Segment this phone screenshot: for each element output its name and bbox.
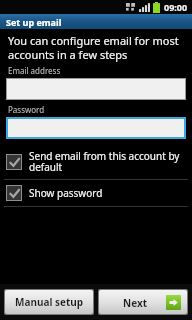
button[interactable]: Show password bbox=[0, 180, 192, 206]
staticText: 09:00 bbox=[164, 1, 188, 13]
staticText: Manual setup bbox=[15, 295, 84, 309]
button[interactable]: Send email from this account by default bbox=[0, 144, 192, 179]
staticText: You can configure email for most account… bbox=[8, 33, 180, 62]
staticText: Set up email bbox=[6, 16, 62, 28]
staticText: Email address bbox=[8, 65, 61, 76]
button[interactable]: Next bbox=[99, 290, 187, 314]
staticText: Show password bbox=[29, 186, 184, 200]
staticText: Send email from this account by default bbox=[29, 149, 184, 174]
staticText: Password bbox=[8, 104, 45, 115]
other: Next bbox=[166, 295, 181, 310]
button[interactable]: Manual setup bbox=[5, 290, 93, 314]
staticText: Next bbox=[123, 296, 148, 310]
